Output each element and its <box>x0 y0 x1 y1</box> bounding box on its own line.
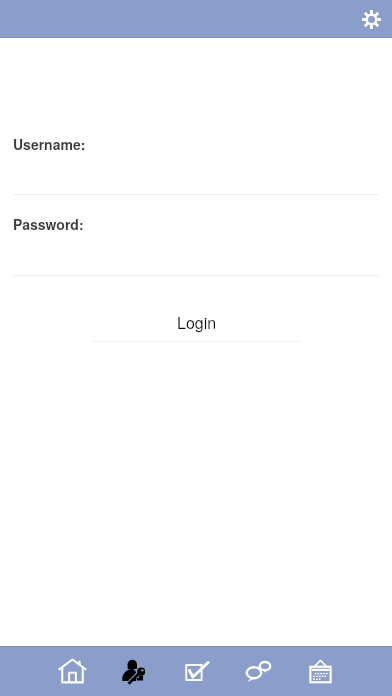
staticText: Username: <box>13 134 86 154</box>
button[interactable]: Tasks <box>165 647 227 692</box>
staticText: Password: <box>13 214 84 234</box>
button[interactable]: Messages <box>227 647 289 692</box>
staticText: Login <box>177 311 217 334</box>
button[interactable]: Home <box>41 647 103 692</box>
button[interactable]: Calendar <box>289 647 351 692</box>
button[interactable]: Login <box>93 311 300 342</box>
button[interactable]: Account <box>103 647 165 692</box>
button[interactable]: Settings <box>355 3 387 35</box>
